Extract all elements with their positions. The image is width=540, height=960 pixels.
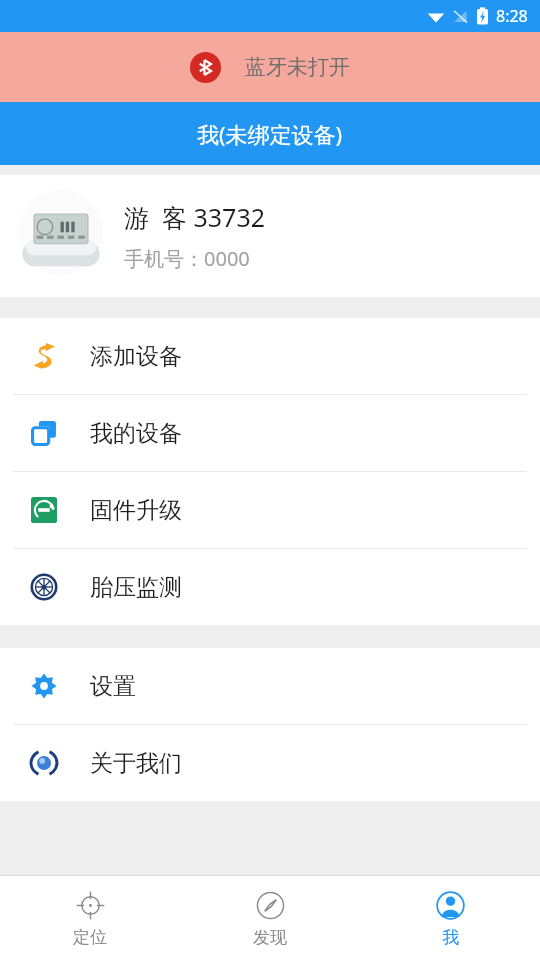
staticText: 蓝牙未打开 bbox=[245, 54, 350, 80]
staticText: 我的设备 bbox=[90, 419, 182, 448]
button[interactable]: 设置 bbox=[0, 648, 540, 724]
staticText: 我 bbox=[442, 927, 459, 948]
button[interactable]: 固件升级 bbox=[0, 472, 540, 548]
staticText: 发现 bbox=[253, 927, 287, 948]
staticText: 我(未绑定设备) bbox=[197, 119, 343, 149]
button[interactable]: Location bbox=[0, 876, 180, 960]
button[interactable]: 胎压监测 bbox=[0, 549, 540, 625]
staticText: 固件升级 bbox=[90, 496, 182, 525]
button[interactable]: 关于我们 bbox=[0, 725, 540, 801]
staticText: 游 客 33732 bbox=[124, 200, 266, 234]
button[interactable]: 我的设备 bbox=[0, 395, 540, 471]
button[interactable]: Discover bbox=[180, 876, 360, 960]
button[interactable]: 蓝牙未打开 bbox=[0, 32, 540, 102]
staticText: 定位 bbox=[73, 927, 107, 948]
staticText: 手机号：0000 bbox=[124, 245, 250, 272]
staticText: 关于我们 bbox=[90, 749, 182, 778]
button[interactable]: 游 客 33732 bbox=[0, 175, 540, 297]
button[interactable]: Me bbox=[360, 876, 540, 960]
staticText: 设置 bbox=[90, 672, 136, 701]
button[interactable]: 添加设备 bbox=[0, 318, 540, 394]
staticText: 胎压监测 bbox=[90, 573, 182, 602]
staticText: 添加设备 bbox=[90, 342, 182, 371]
staticText: 8:28 bbox=[496, 5, 528, 27]
